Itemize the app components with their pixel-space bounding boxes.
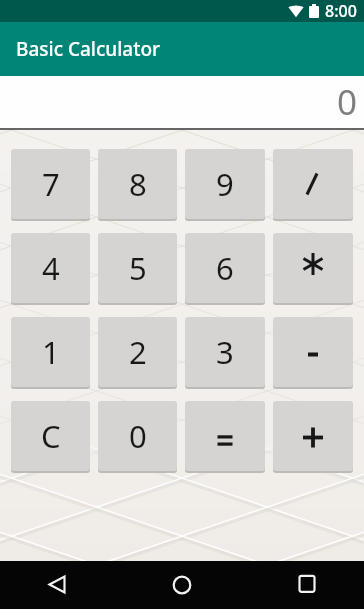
button[interactable]: [0, 561, 122, 609]
button[interactable]: 2: [98, 317, 177, 387]
staticText: 5: [129, 247, 147, 289]
staticText: 3: [216, 331, 234, 373]
staticText: 0: [337, 78, 358, 126]
staticText: 0: [129, 415, 147, 457]
staticText: 6: [216, 247, 234, 289]
button[interactable]: [122, 561, 243, 609]
button[interactable]: 8: [98, 149, 177, 219]
button[interactable]: 1: [11, 317, 90, 387]
button[interactable]: [273, 233, 353, 303]
staticText: 8:00: [325, 0, 357, 22]
staticText: 8: [129, 163, 147, 205]
button[interactable]: [273, 317, 353, 387]
button[interactable]: 7: [11, 149, 90, 219]
button[interactable]: 4: [11, 233, 90, 303]
staticText: 4: [42, 247, 60, 289]
button[interactable]: 0: [98, 401, 177, 471]
button[interactable]: [185, 401, 265, 471]
button[interactable]: 9: [185, 149, 265, 219]
staticText: 2: [129, 331, 147, 373]
button[interactable]: [273, 149, 353, 219]
button[interactable]: 0: [0, 76, 364, 128]
button[interactable]: 3: [185, 317, 265, 387]
staticText: 9: [216, 163, 234, 205]
staticText: 1: [42, 331, 60, 373]
staticText: C: [41, 415, 61, 457]
button[interactable]: [243, 561, 364, 609]
staticText: Basic Calculator: [16, 36, 161, 62]
button[interactable]: 5: [98, 233, 177, 303]
button[interactable]: [273, 401, 353, 471]
button[interactable]: 6: [185, 233, 265, 303]
staticText: 7: [42, 163, 60, 205]
button[interactable]: C: [11, 401, 90, 471]
